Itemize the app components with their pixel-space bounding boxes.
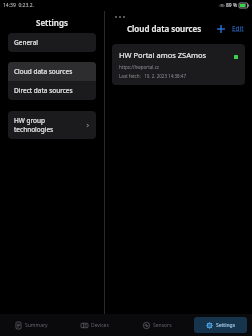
staticText: HW Portal amos ZSAmos	[119, 50, 207, 60]
button[interactable]: Sensors	[131, 317, 184, 333]
staticText: 14:39 0:23.2.	[3, 2, 34, 9]
button[interactable]: Add data source	[215, 23, 227, 35]
staticText: Settings	[216, 322, 236, 329]
button[interactable]: General	[8, 33, 96, 52]
button[interactable]: Direct data sources	[8, 81, 96, 100]
button[interactable]: HW Portal amos ZSAmos	[112, 44, 245, 85]
staticText: Summary	[25, 322, 48, 329]
staticText: Settings	[36, 17, 68, 28]
staticText: 89 %	[226, 2, 238, 9]
staticText: Edit	[232, 24, 244, 33]
button[interactable]: Edit	[230, 22, 246, 35]
staticText: Sensors	[153, 322, 172, 329]
staticText: Cloud data sources	[127, 23, 202, 34]
staticText: Cloud data sources	[14, 67, 90, 76]
button[interactable]: Summary	[5, 317, 58, 333]
button[interactable]: HW group technologies	[8, 111, 96, 139]
button[interactable]: Settings	[194, 317, 247, 333]
staticText: Devices	[91, 322, 109, 329]
button[interactable]: Devices	[68, 317, 121, 333]
staticText: https://hwportal.cz	[119, 64, 159, 70]
button[interactable]: Cloud data sources	[8, 62, 96, 81]
staticText: Direct data sources	[14, 86, 90, 95]
staticText: HW group technologies	[14, 116, 85, 134]
staticText: Last fetch: 10. 2. 2023 14:38:47	[119, 73, 186, 79]
staticText: General	[14, 38, 90, 47]
